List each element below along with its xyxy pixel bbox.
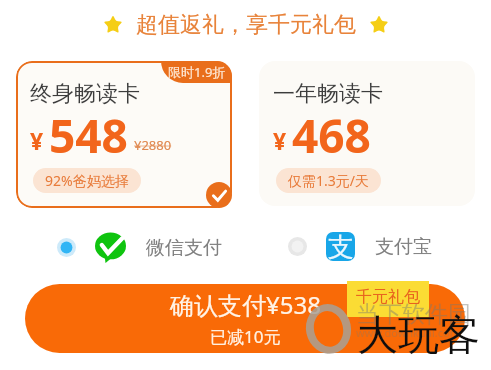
other: Selected [206,182,232,208]
staticText: 限时1.9折 [168,63,226,81]
staticText: 微信支付 [146,236,222,260]
staticText: 终身畅读卡 [30,80,140,108]
staticText: 已减10元 [210,325,281,348]
staticText: 468 [292,104,371,167]
button[interactable]: 确认支付¥538 [25,284,465,353]
staticText: www.downkuai.com [356,325,460,340]
button[interactable]: WeChat Pay [57,232,222,263]
other: WeChat Pay [95,232,126,263]
staticText: 千元礼包 [356,287,420,307]
staticText: ¥2880 [134,136,172,154]
button[interactable]: 终身畅读卡 [16,61,232,208]
staticText: 92%爸妈选择 [45,171,129,190]
staticText: 当下软件园 [356,300,471,329]
staticText: 支 [328,232,354,260]
staticText: ¥ [30,125,44,156]
staticText: 548 [49,104,128,167]
other: Alipay [326,232,355,261]
staticText: 一年畅读卡 [273,80,383,108]
staticText: 确认支付¥538 [170,288,321,321]
staticText: 大玩客 [357,310,480,362]
button[interactable]: 一年畅读卡 [259,61,475,206]
button[interactable]: Alipay [288,232,432,261]
staticText: ¥ [273,125,287,156]
staticText: 支付宝 [375,235,432,259]
staticText: 超值返礼，享千元礼包 [136,11,356,39]
staticText: 仅需1.3元/天 [288,171,369,190]
